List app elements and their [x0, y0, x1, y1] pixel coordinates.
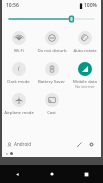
button[interactable]: Battery Saver	[35, 60, 68, 84]
staticText: Android	[14, 141, 32, 147]
button[interactable]: Mobile data	[68, 60, 101, 89]
staticText: Battery Saver	[38, 78, 65, 84]
staticText: No internet	[75, 84, 95, 89]
staticText: 100%	[84, 2, 97, 9]
button[interactable]: Wi-Fi	[2, 29, 35, 53]
button[interactable]: Back	[0, 165, 35, 183]
button[interactable]	[10, 152, 13, 155]
button[interactable]: Home	[35, 165, 69, 183]
button[interactable]: Auto-rotate	[68, 29, 101, 53]
button[interactable]: Edit tiles	[74, 139, 84, 149]
staticText: Dark mode	[7, 78, 30, 84]
button[interactable]: Airplane mode	[2, 91, 35, 115]
button[interactable]: Dark mode	[2, 60, 35, 84]
button[interactable]: Do not disturb	[35, 29, 68, 53]
staticText: Cast	[47, 109, 56, 115]
staticText: 10:56	[6, 2, 19, 9]
button[interactable]: Settings	[86, 139, 96, 149]
staticText: Auto-rotate	[73, 47, 97, 53]
button[interactable]: Cast	[35, 91, 68, 115]
staticText: Wi-Fi	[14, 47, 24, 53]
button[interactable]: Brightness	[9, 11, 94, 27]
button[interactable]: Recents	[69, 165, 103, 183]
staticText: Do not disturb	[37, 47, 67, 53]
button[interactable]: Android	[7, 141, 32, 147]
staticText: Mobile data	[73, 78, 97, 84]
staticText: Airplane mode	[4, 109, 34, 115]
